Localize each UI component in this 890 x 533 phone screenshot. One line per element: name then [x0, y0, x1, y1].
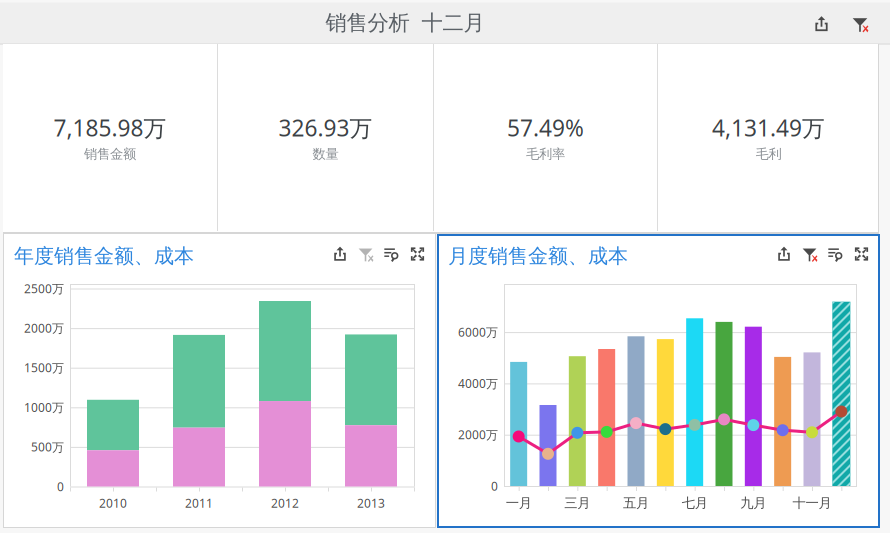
button[interactable]: 326.93万: [218, 44, 433, 231]
staticText: 1500万: [24, 360, 64, 376]
staticText: 一月: [506, 495, 532, 511]
button[interactable]: 4,131.49万: [658, 44, 879, 231]
staticText: 毛利率: [526, 146, 565, 162]
button[interactable]: Clear filter: [802, 246, 818, 262]
staticText: 2011: [185, 495, 213, 511]
staticText: 4000万: [458, 375, 498, 391]
staticText: 月度销售金额、成本: [448, 244, 628, 268]
staticText: 毛利: [755, 146, 781, 162]
staticText: 0: [57, 478, 64, 494]
staticText: 6000万: [458, 324, 498, 340]
staticText: 2013: [357, 495, 385, 511]
staticText: 2010: [99, 495, 127, 511]
staticText: 2000万: [458, 427, 498, 443]
button[interactable]: Clear filter: [358, 246, 374, 262]
button[interactable]: Full screen: [410, 246, 425, 261]
button[interactable]: Export: [776, 246, 792, 262]
button[interactable]: Sort and search: [384, 246, 400, 262]
staticText: 326.93万: [278, 113, 372, 143]
staticText: 2000万: [24, 320, 64, 336]
staticText: 0: [491, 478, 498, 494]
staticText: 500万: [31, 439, 64, 455]
button[interactable]: Sort and search: [828, 246, 844, 262]
staticText: 销售分析 十二月: [325, 10, 484, 36]
staticText: 年度销售金额、成本: [14, 244, 194, 268]
button[interactable]: 7,185.98万: [3, 44, 217, 231]
staticText: 十一月: [792, 495, 831, 511]
button[interactable]: Full screen: [854, 246, 869, 261]
staticText: 2500万: [24, 280, 64, 296]
button[interactable]: Clear filter: [852, 15, 869, 32]
staticText: 九月: [740, 495, 766, 511]
button[interactable]: 57.49%: [434, 44, 657, 231]
staticText: 1000万: [24, 399, 64, 415]
staticText: 数量: [312, 146, 338, 162]
staticText: 4,131.49万: [712, 113, 825, 143]
staticText: 五月: [623, 495, 649, 511]
staticText: 七月: [682, 495, 708, 511]
staticText: 7,185.98万: [53, 113, 166, 143]
staticText: 三月: [564, 495, 590, 511]
staticText: 2012: [271, 495, 299, 511]
button[interactable]: Export: [813, 15, 830, 32]
staticText: 57.49%: [507, 113, 584, 143]
button[interactable]: Export: [332, 246, 348, 262]
staticText: 销售金额: [84, 146, 136, 162]
